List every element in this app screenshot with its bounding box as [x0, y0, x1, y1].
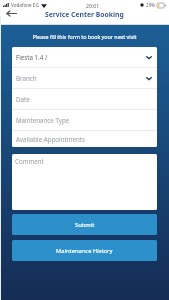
button[interactable]: Back	[3, 7, 19, 19]
button[interactable]: Available Appointments	[12, 131, 157, 147]
staticText: Available Appointments	[16, 135, 85, 143]
staticText: 20:01	[86, 2, 100, 9]
staticText: Submit	[75, 221, 95, 229]
other: Expand Branch	[146, 77, 152, 80]
staticText: Maintenance History	[56, 247, 113, 255]
staticText: 29%	[146, 2, 156, 8]
staticText: Vodafone EG	[11, 2, 39, 8]
button[interactable]: Branch	[12, 68, 157, 88]
staticText: Maintenance Type	[16, 116, 70, 124]
button[interactable]: Date	[12, 89, 157, 109]
staticText: Please fill this form to book your next …	[0, 33, 169, 40]
staticText: Fiesta 1.4 /	[16, 53, 48, 61]
staticText: Comment	[15, 157, 44, 165]
staticText: Date	[16, 95, 30, 103]
button[interactable]: Fiesta 1.4 /	[12, 47, 157, 67]
other: Expand Fiesta 1.4 /	[146, 56, 152, 59]
button[interactable]: Maintenance Type	[12, 110, 157, 130]
button[interactable]: Comment	[12, 154, 157, 210]
button[interactable]: Submit	[12, 214, 157, 235]
button[interactable]: Maintenance History	[12, 240, 157, 261]
staticText: Service Center Booking	[45, 10, 124, 19]
staticText: Branch	[16, 74, 37, 82]
